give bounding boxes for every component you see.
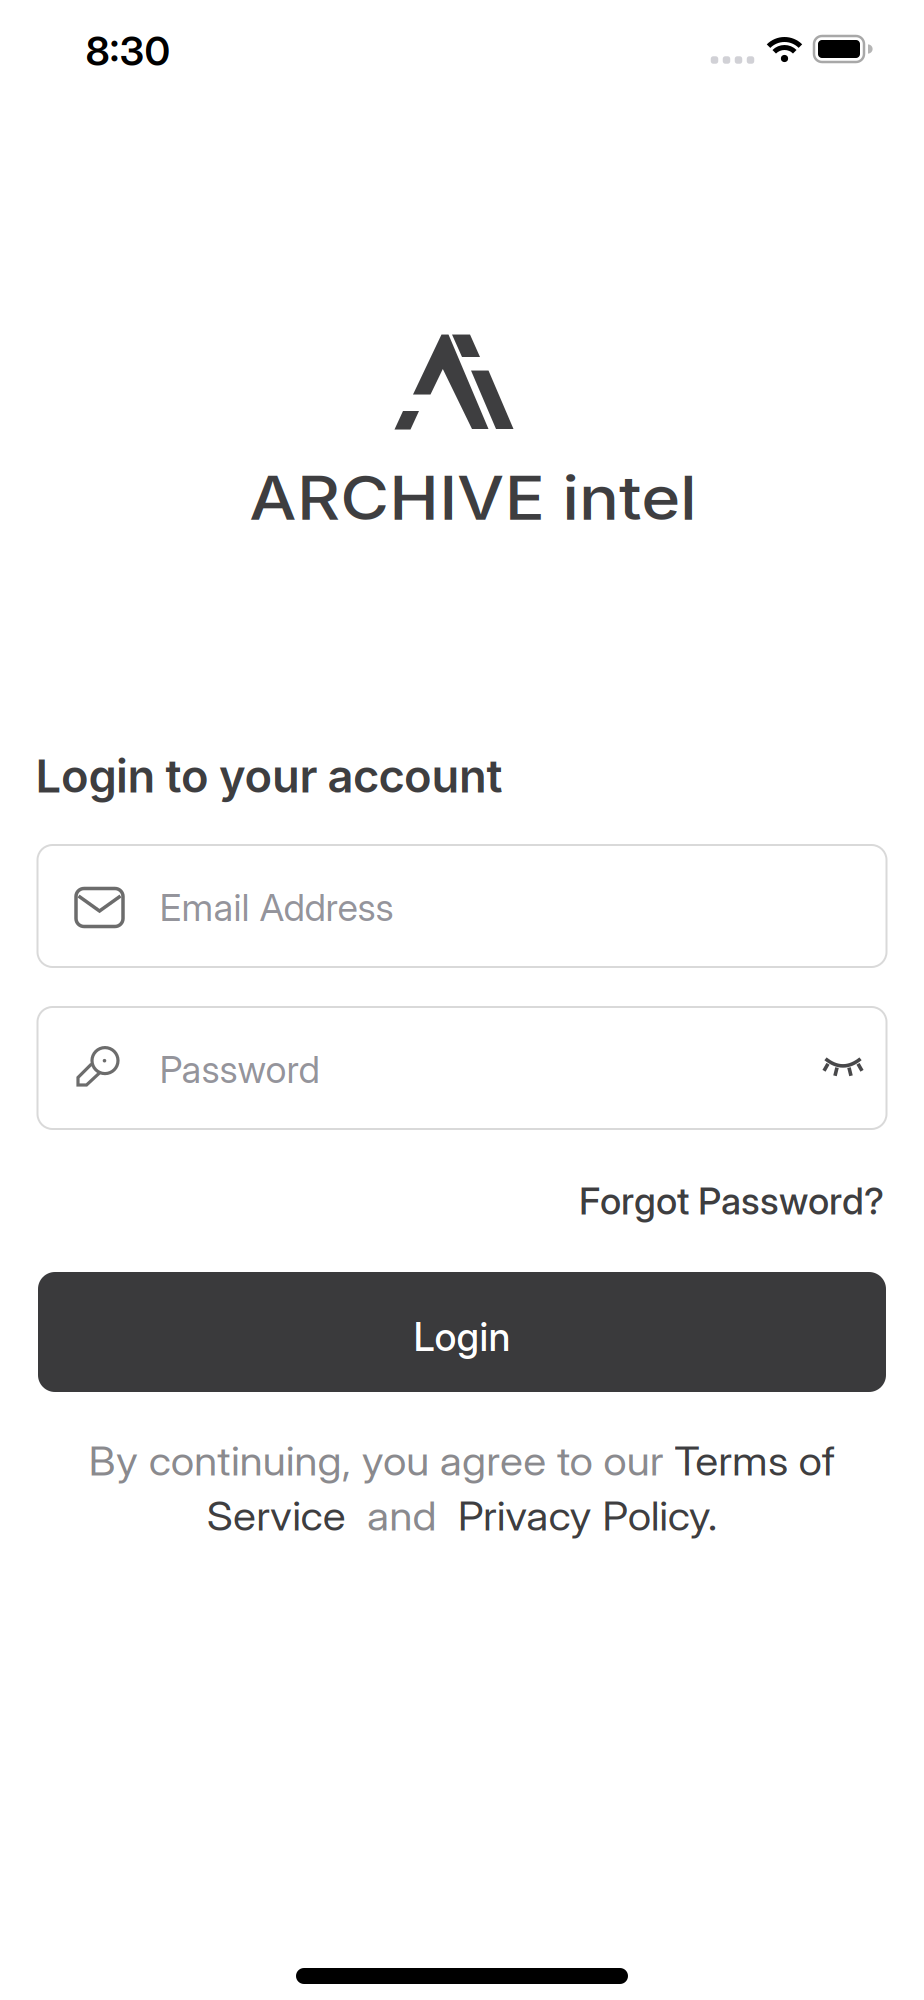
button[interactable]: Service bbox=[220, 1492, 352, 1540]
staticText: Login bbox=[413, 1314, 510, 1360]
staticText: Forgot Password? bbox=[579, 1179, 884, 1223]
staticText: Privacy Policy. bbox=[458, 1492, 704, 1540]
staticText: ARCHIVE intel bbox=[271, 463, 674, 533]
staticText: Login to your account bbox=[35, 749, 502, 803]
staticText: Service bbox=[220, 1492, 352, 1540]
staticText: Terms of bbox=[663, 1437, 816, 1485]
button[interactable]: Forgot Password? bbox=[579, 1179, 884, 1223]
staticText: 8:30 bbox=[85, 27, 170, 75]
button[interactable]: Show password bbox=[815, 1044, 871, 1090]
staticText: Password bbox=[159, 1047, 319, 1091]
button[interactable]: Terms of bbox=[663, 1437, 816, 1485]
staticText: Email Address bbox=[159, 885, 393, 929]
button[interactable]: Privacy Policy. bbox=[458, 1492, 704, 1540]
button[interactable]: Login bbox=[38, 1272, 886, 1392]
staticText: By continuing, you agree to our bbox=[108, 1437, 663, 1485]
staticText: and bbox=[352, 1492, 458, 1540]
